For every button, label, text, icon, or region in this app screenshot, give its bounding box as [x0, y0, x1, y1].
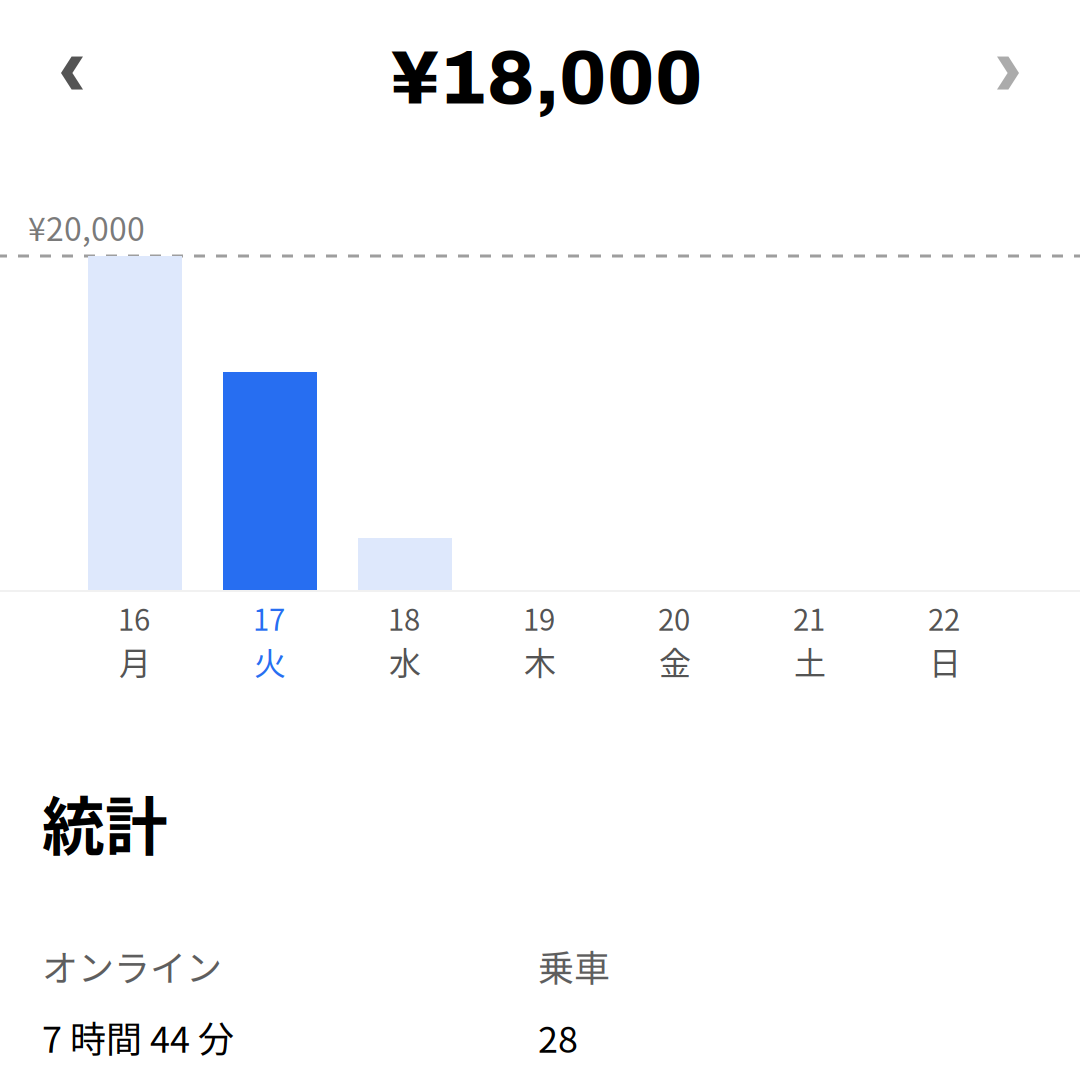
staticText: 17: [253, 597, 285, 639]
button[interactable]: Previous day: [17, 17, 127, 129]
button[interactable]: 19: [472, 592, 607, 688]
button[interactable]: 16: [67, 592, 202, 688]
staticText: 火: [254, 638, 286, 684]
staticText: 21: [793, 597, 825, 639]
button[interactable]: 21: [742, 592, 877, 688]
staticText: 日: [929, 638, 961, 684]
staticText: 16: [118, 597, 150, 639]
button[interactable]: Next day: [953, 17, 1063, 129]
staticText: 月: [119, 638, 151, 684]
staticText: 7 時間 44 分: [42, 1011, 234, 1063]
staticText: ¥18,000: [391, 37, 703, 119]
button[interactable]: 22: [877, 592, 1012, 688]
button[interactable]: 18: [337, 592, 472, 688]
staticText: 28: [538, 1011, 578, 1063]
staticText: 乗車: [538, 940, 610, 992]
staticText: 木: [524, 638, 556, 684]
staticText: 18: [388, 597, 420, 639]
staticText: 22: [928, 597, 960, 639]
button[interactable]: 20: [607, 592, 742, 688]
staticText: オンライン: [42, 940, 222, 992]
staticText: 水: [389, 638, 421, 684]
staticText: 土: [794, 638, 826, 684]
staticText: 20: [658, 597, 690, 639]
button[interactable]: 17: [202, 592, 337, 688]
staticText: 金: [659, 638, 691, 684]
staticText: 統計: [42, 777, 168, 867]
staticText: ¥20,000: [28, 204, 145, 250]
staticText: 19: [523, 597, 555, 639]
